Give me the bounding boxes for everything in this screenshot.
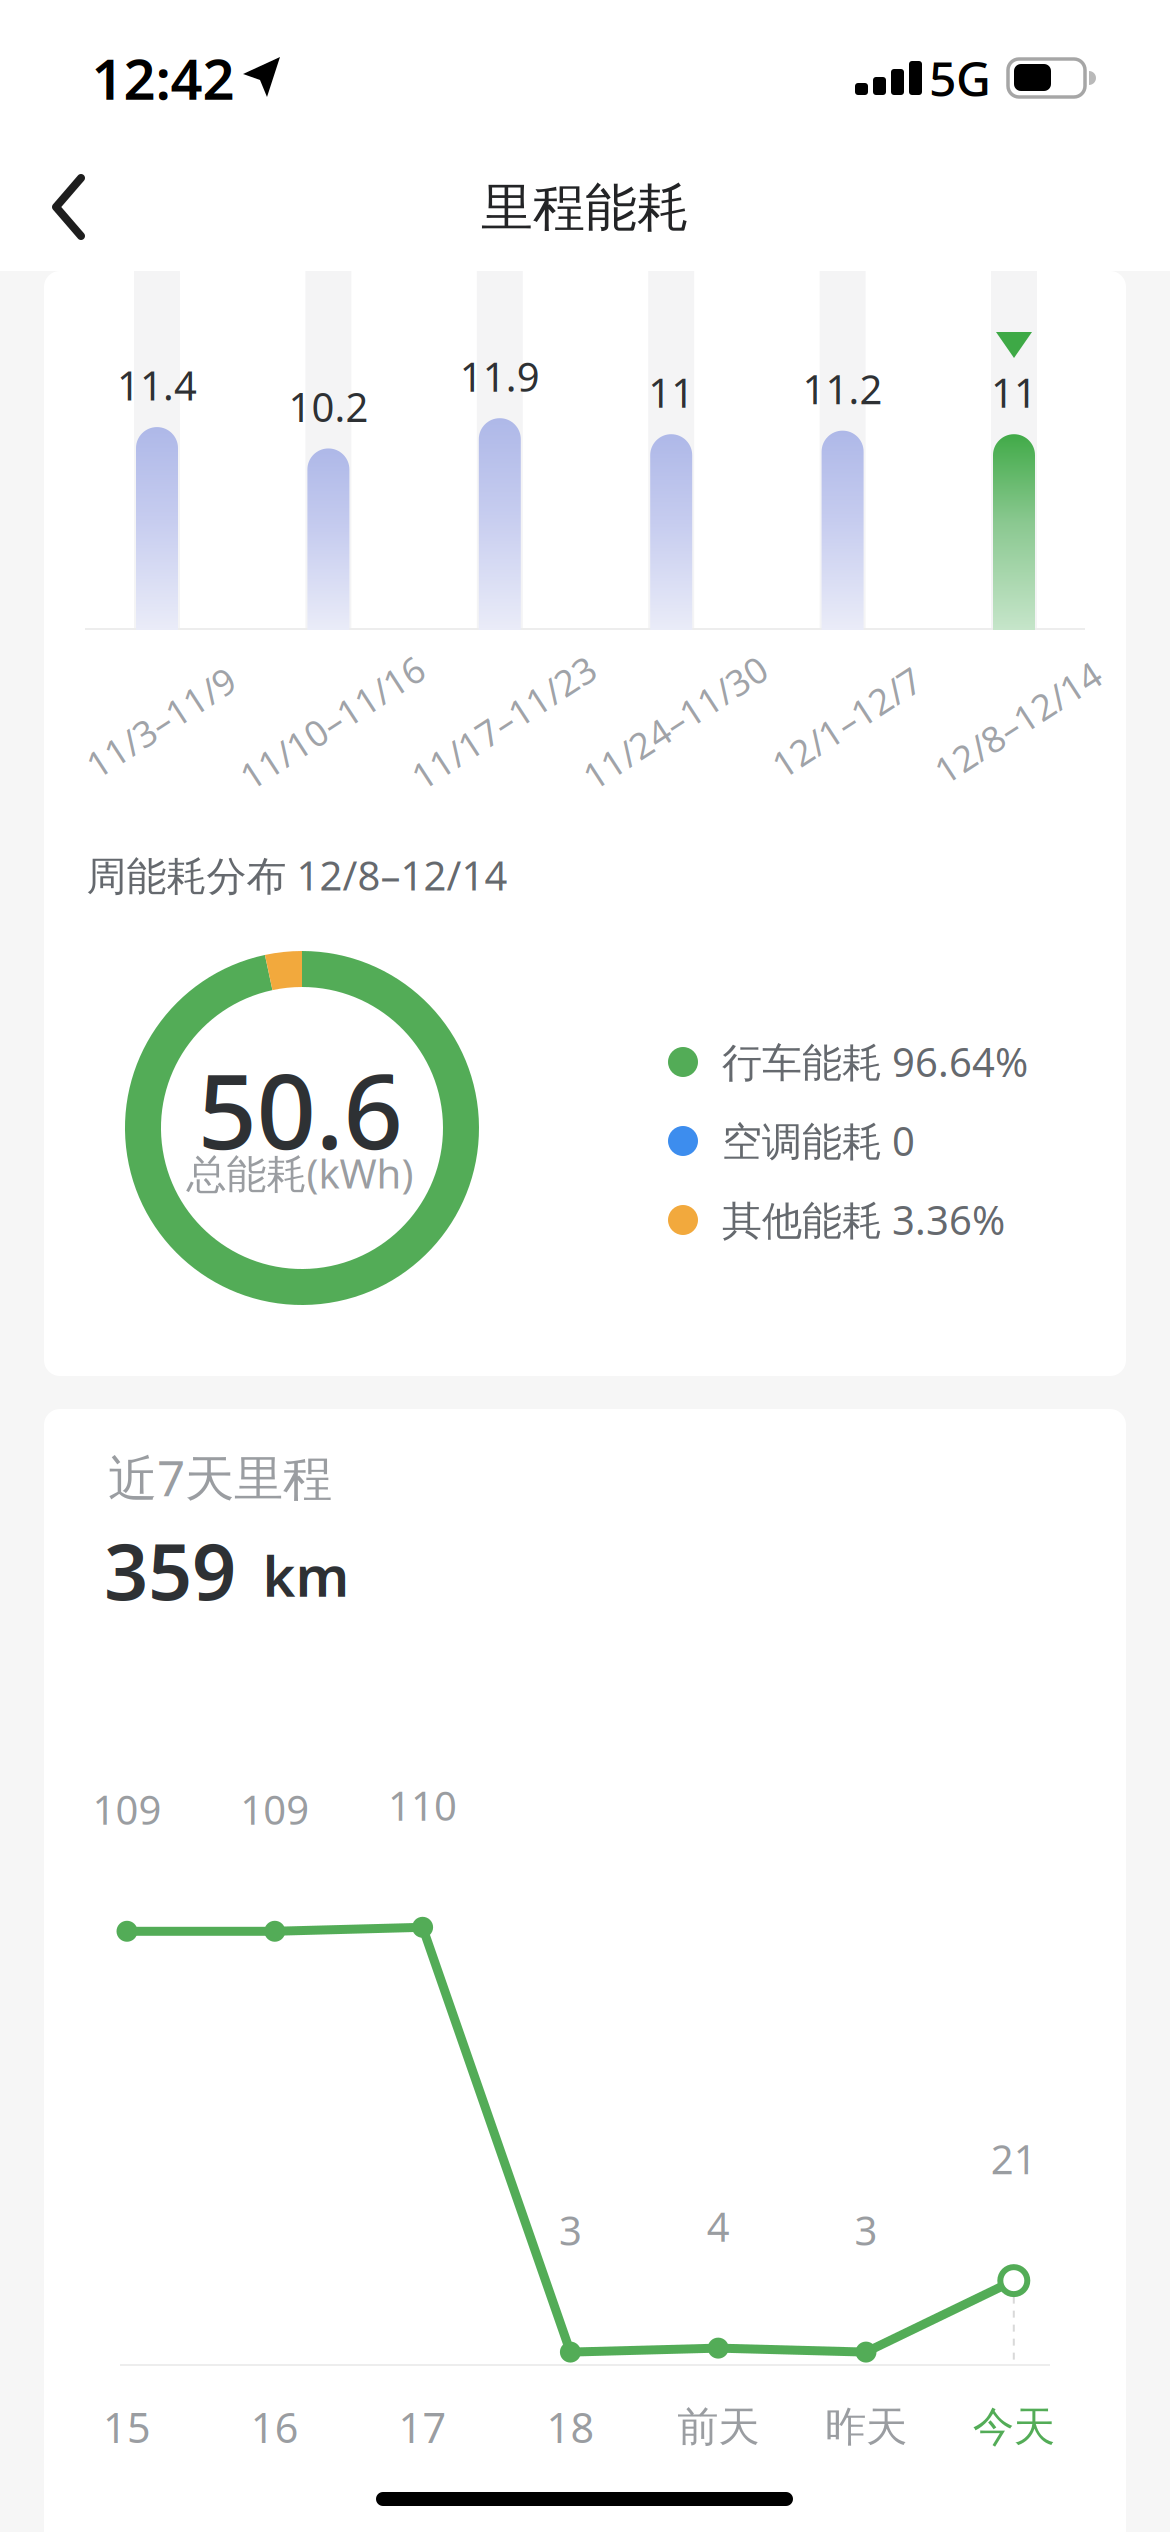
staticText: 空调能耗 0 [722,1114,915,1167]
staticText: 21 [991,2132,1037,2185]
staticText: 110 [388,1779,457,1832]
staticText: 16 [251,2400,299,2454]
staticText: 10.2 [288,380,368,433]
staticText: 11/3–11/9 [76,698,246,746]
staticText: 3 [854,2203,877,2257]
staticText: 周能耗分布 12/8–12/14 [86,848,507,901]
staticText: 11.2 [803,362,883,415]
staticText: 11.4 [117,358,197,412]
staticText: 17 [399,2400,447,2454]
staticText: 5G [929,46,991,110]
staticText: 109 [240,1783,309,1836]
staticText: 18 [546,2400,594,2454]
staticText: 里程能耗 [481,176,689,240]
staticText: 109 [92,1783,161,1836]
staticText: 近7天里程 [108,1444,332,1510]
staticText: 3 [559,2203,582,2257]
staticText: 11 [648,366,694,419]
staticText: 12/8–12/14 [922,698,1113,746]
staticText: 11/24–11/30 [569,698,781,746]
staticText: 4 [707,2200,730,2253]
staticText: 15 [103,2400,151,2454]
staticText: 总能耗(kWh) [186,1146,413,1199]
staticText: 今天 [973,2402,1055,2452]
button[interactable]: Back [0,0,120,140]
staticText: 行车能耗 96.64% [722,1035,1028,1088]
staticText: 11/17–11/23 [398,698,610,746]
staticText: 12:42 [91,41,234,115]
staticText: 昨天 [825,2402,907,2452]
staticText: 11.9 [460,350,540,403]
staticText: 11/10–11/16 [226,698,438,746]
staticText: km [262,1538,349,1612]
staticText: 前天 [677,2402,759,2452]
staticText: 50.6 [197,1040,402,1178]
staticText: 12/1–12/7 [762,698,932,746]
staticText: 359 [104,1519,236,1621]
staticText: 其他能耗 3.36% [722,1193,1005,1246]
staticText: 11 [991,366,1037,419]
